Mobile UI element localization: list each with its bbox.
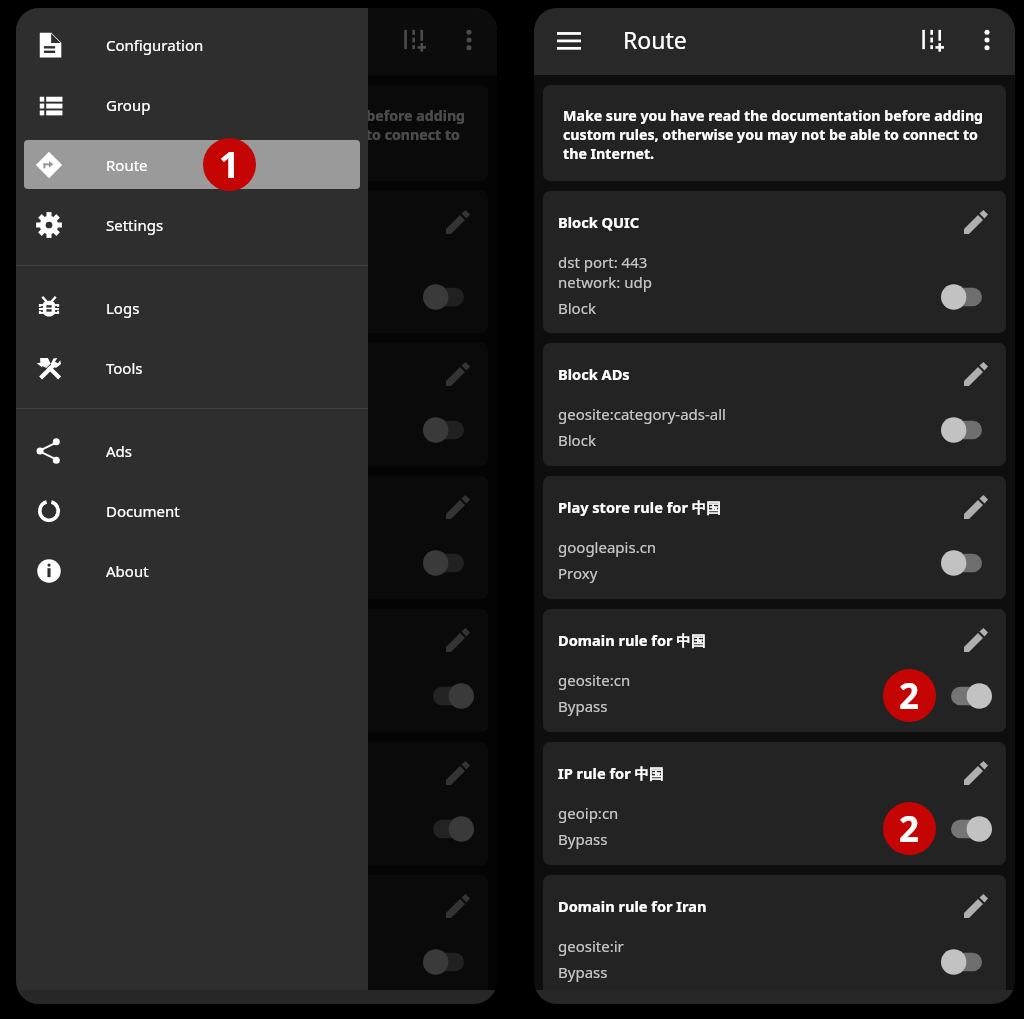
button[interactable]: Enable rule [941,417,992,443]
button[interactable]: Play store rule for 中国 [543,476,1006,599]
staticText: Route [105,24,169,55]
button[interactable]: Domain rule for 中国 [25,609,488,732]
staticText: Proxy [40,563,80,583]
staticText: Route [106,155,148,175]
staticText: googleapis.cn [558,537,657,557]
button[interactable]: Edit rule [440,623,474,657]
staticText: dst port: 443 [558,252,648,272]
staticText: geosite:category-ads-all [558,404,726,424]
staticText: Proxy [558,563,598,583]
button[interactable]: Open navigation drawer [29,18,73,62]
button[interactable]: Edit rule [958,205,992,239]
button[interactable]: Block QUIC [25,191,488,333]
staticText: Domain rule for 中国 [558,630,706,650]
button[interactable]: Edit rule [440,357,474,391]
staticText: Domain rule for Iran [558,896,707,916]
staticText: Configuration [106,35,204,55]
button[interactable]: Enable rule [423,284,474,310]
button[interactable]: Settings [24,200,360,249]
button[interactable]: Edit rule [958,490,992,524]
button[interactable]: Block ADs [543,343,1006,466]
staticText: Bypass [558,696,608,716]
button[interactable]: Edit rule [958,623,992,657]
button[interactable]: About [24,546,360,595]
staticText: Block [40,430,78,450]
staticText: 2 [899,805,920,853]
button[interactable]: Tools [24,343,360,392]
staticText: Logs [106,298,140,318]
button[interactable]: Block QUIC [543,191,1006,333]
staticText: Route [623,24,687,55]
button[interactable]: Enable rule [941,284,992,310]
staticText: Tools [106,358,143,378]
button[interactable]: Configuration [24,20,360,69]
button[interactable]: Edit rule [958,357,992,391]
staticText: geosite:category-ads-all [40,404,208,424]
button[interactable]: Route [24,140,360,189]
staticText: geoip:cn [558,803,619,823]
staticText: dst port: 443 [40,252,130,272]
staticText: Block [558,298,596,318]
button[interactable]: Disable rule [941,816,992,842]
button[interactable]: Edit rule [440,889,474,923]
button[interactable]: Add rule [392,16,440,64]
button[interactable]: Edit rule [958,889,992,923]
staticText: 1 [219,140,240,189]
button[interactable]: More options [445,16,493,64]
button[interactable]: Play store rule for 中国 [25,476,488,599]
button[interactable]: Disable rule [423,683,474,709]
button[interactable]: Block ADs [25,343,488,466]
staticText: Play store rule for 中国 [40,497,203,517]
button[interactable]: Disable rule [941,683,992,709]
button[interactable]: Enable rule [423,417,474,443]
button[interactable]: More options [963,16,1011,64]
staticText: network: udp [558,272,652,292]
button[interactable]: IP rule for 中国 [543,742,1006,865]
staticText: Block [40,298,78,318]
staticText: Document [106,501,180,521]
staticText: Ads [106,441,132,461]
button[interactable]: Disable rule [423,816,474,842]
staticText: Block [558,430,596,450]
button[interactable]: IP rule for 中国 [25,742,488,865]
staticText: About [106,561,149,581]
button[interactable]: Document [24,486,360,535]
button[interactable]: Edit rule [958,756,992,790]
staticText: Bypass [558,829,608,849]
staticText: Play store rule for 中国 [558,497,721,517]
button[interactable]: Enable rule [423,550,474,576]
staticText: Make sure you have read the documentatio… [563,106,1000,163]
button[interactable]: Edit rule [440,490,474,524]
button[interactable]: Enable rule [941,550,992,576]
button[interactable]: Edit rule [440,205,474,239]
staticText: Bypass [558,962,608,982]
staticText: Make sure you have read the documentatio… [45,106,482,163]
button[interactable]: Logs [24,283,360,332]
staticText: 2 [899,672,920,720]
button[interactable]: Domain rule for 中国 [543,609,1006,732]
button[interactable]: Enable rule [941,949,992,975]
staticText: geosite:ir [558,936,624,956]
staticText: Block ADs [40,364,112,384]
staticText: Block ADs [558,364,630,384]
button[interactable]: Enable rule [423,949,474,975]
staticText: geosite:cn [558,670,631,690]
button[interactable]: Open navigation drawer [547,18,591,62]
button[interactable]: Group [24,80,360,129]
button[interactable]: Domain rule for Iran [543,875,1006,998]
staticText: Settings [106,215,164,235]
button[interactable]: Domain rule for Iran [25,875,488,998]
button[interactable]: Ads [24,426,360,475]
button[interactable]: Add rule [910,16,958,64]
button[interactable]: Edit rule [440,756,474,790]
